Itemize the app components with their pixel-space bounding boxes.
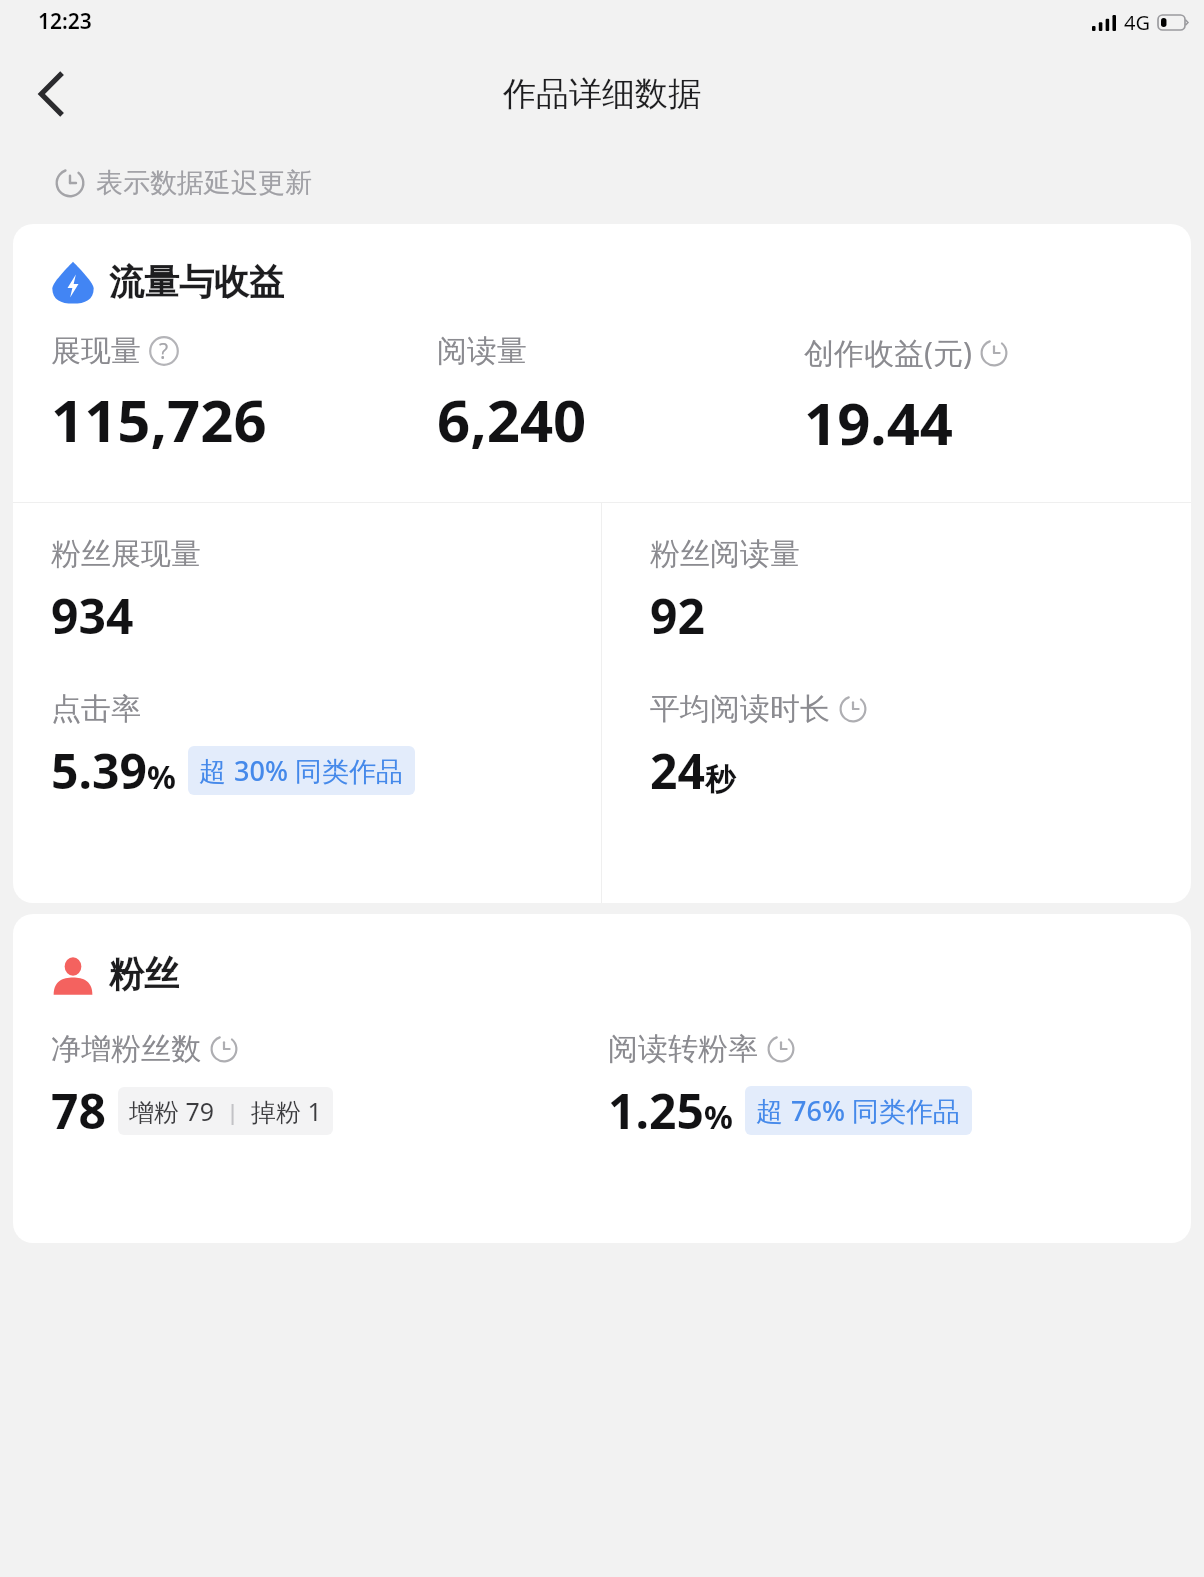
staticText: 19.44 [804,383,954,462]
staticText: 粉丝展现量 [51,535,201,573]
staticText: 115,726 [51,380,267,459]
staticText: 点击率 [51,690,141,728]
staticText: 创作收益(元) [804,332,972,373]
staticText: 12:23 [38,7,92,36]
staticText: 掉粉 1 [251,1094,322,1128]
staticText: 24 [650,738,705,803]
staticText: 超 [756,1092,791,1129]
button[interactable]: Back [22,65,80,123]
staticText: 净增粉丝数 [51,1030,201,1068]
staticText: 表示数据延迟更新 [96,166,312,200]
staticText: 5.39 [51,738,147,803]
staticText: 阅读转粉率 [608,1030,758,1068]
staticText: % [704,1095,733,1139]
staticText: 超 [199,752,234,789]
staticText: 1.25 [608,1078,704,1143]
staticText: 4G [1124,9,1150,36]
staticText: 934 [51,583,134,648]
staticText: 秒 [705,761,735,799]
staticText: 6,240 [437,380,587,459]
staticText: 阅读量 [437,332,527,370]
staticText: 92 [650,583,705,648]
staticText: 平均阅读时长 [650,690,830,728]
staticText: 同类作品 [288,752,404,789]
button[interactable]: 粉丝 [13,914,1191,1243]
staticText: 展现量 [51,332,141,370]
staticText: 78 [51,1078,106,1143]
button[interactable]: 流量与收益 [13,224,1191,903]
staticText: % [147,755,176,799]
staticText: 流量与收益 [109,260,284,304]
staticText: | [215,1096,251,1126]
staticText: 76% [791,1092,845,1129]
staticText: 同类作品 [845,1092,961,1129]
staticText: 30% [234,752,288,789]
staticText: 粉丝阅读量 [650,535,800,573]
staticText: 粉丝 [109,952,179,996]
staticText: 作品详细数据 [503,73,701,115]
staticText: 增粉 79 [129,1094,215,1128]
staticText: ? [159,337,169,366]
